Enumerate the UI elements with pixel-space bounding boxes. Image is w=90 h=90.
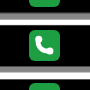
button[interactable]: Previous app: [29, 0, 60, 7]
button[interactable]: Phone: [29, 30, 60, 61]
button[interactable]: Next app: [29, 83, 60, 90]
